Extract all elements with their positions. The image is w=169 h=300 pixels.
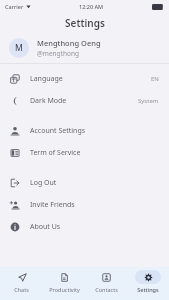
- staticText: Dark Mode: [30, 96, 67, 106]
- staticText: About Us: [30, 222, 61, 232]
- button[interactable]: Chats: [0, 267, 43, 300]
- staticText: Account Settings: [30, 126, 86, 136]
- staticText: Chats: [14, 286, 29, 293]
- staticText: Settings: [65, 16, 105, 30]
- staticText: Term of Service: [30, 148, 81, 158]
- staticText: Language: [30, 74, 63, 84]
- staticText: EN: [151, 75, 159, 83]
- button[interactable]: Log Out: [0, 172, 169, 194]
- button[interactable]: Term of Service: [0, 142, 169, 164]
- staticText: @mengthong: [37, 49, 79, 58]
- button[interactable]: Settings: [127, 267, 169, 300]
- staticText: 12:20 AM: [79, 3, 104, 10]
- button[interactable]: About Us: [0, 216, 169, 238]
- button[interactable]: Contacts: [85, 267, 127, 300]
- staticText: M: [15, 42, 23, 54]
- staticText: Carrier: [5, 3, 24, 10]
- button[interactable]: Account Settings: [0, 120, 169, 142]
- staticText: Invite Friends: [30, 200, 75, 210]
- button[interactable]: Productivity: [43, 267, 85, 300]
- button[interactable]: Language: [0, 68, 169, 90]
- staticText: System: [138, 97, 159, 105]
- staticText: Mengthong Oeng: [37, 38, 101, 48]
- staticText: Productivity: [49, 286, 80, 293]
- staticText: Log Out: [30, 178, 57, 188]
- staticText: Contacts: [95, 286, 118, 293]
- staticText: Settings: [137, 286, 159, 293]
- button[interactable]: Dark Mode: [0, 90, 169, 112]
- button[interactable]: M: [0, 33, 169, 63]
- button[interactable]: Invite Friends: [0, 194, 169, 216]
